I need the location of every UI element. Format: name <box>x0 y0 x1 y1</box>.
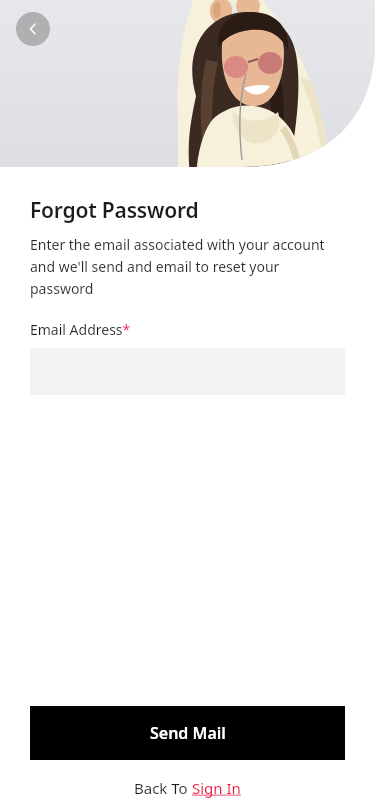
staticText: Sign In <box>192 778 241 798</box>
staticText: Forgot Password <box>30 196 199 225</box>
staticText: Send Mail <box>150 722 226 744</box>
staticText: Email Address* <box>30 320 131 339</box>
button[interactable]: Send Mail <box>30 706 345 760</box>
staticText: Back To <box>134 778 192 798</box>
button[interactable]: Back <box>16 12 50 46</box>
button[interactable]: Back To <box>134 778 241 798</box>
staticText: Enter the email associated with your acc… <box>30 235 345 298</box>
